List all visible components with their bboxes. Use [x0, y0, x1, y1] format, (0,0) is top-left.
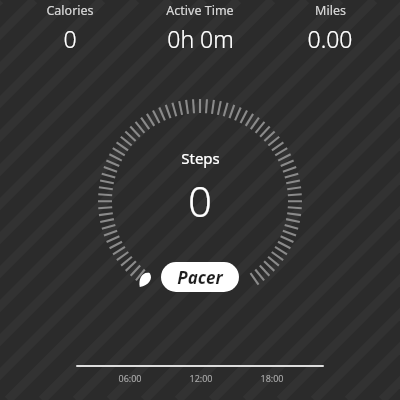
- button[interactable]: Active Time: [140, 2, 260, 54]
- staticText: 18:00: [260, 372, 284, 384]
- staticText: 0.00: [307, 23, 353, 54]
- staticText: 0h 0m: [167, 23, 234, 54]
- staticText: Pacer: [177, 266, 223, 289]
- button[interactable]: Steps: [0, 0, 400, 400]
- staticText: 0: [188, 172, 212, 229]
- staticText: 06:00: [118, 372, 142, 384]
- staticText: Steps: [181, 148, 220, 168]
- button[interactable]: 06:00: [0, 358, 400, 400]
- staticText: 0: [63, 23, 77, 54]
- staticText: Miles: [315, 2, 346, 19]
- staticText: Calories: [46, 2, 94, 19]
- staticText: 12:00: [189, 372, 213, 384]
- button[interactable]: Pacer: [161, 262, 239, 292]
- button[interactable]: Miles: [270, 2, 390, 54]
- staticText: Active Time: [166, 2, 234, 19]
- button[interactable]: Calories: [10, 2, 130, 54]
